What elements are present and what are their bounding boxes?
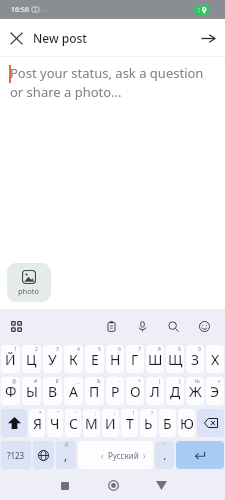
staticText: 6 xyxy=(118,346,121,353)
staticText: Х xyxy=(211,350,220,369)
button[interactable]: Ц xyxy=(22,345,41,373)
staticText: У xyxy=(48,350,57,369)
button[interactable]: Ь xyxy=(140,409,157,437)
staticText: ! xyxy=(133,410,135,417)
staticText: # xyxy=(34,378,38,385)
staticText: New post xyxy=(33,30,87,46)
button[interactable]: В xyxy=(43,377,62,405)
button[interactable]: Enter xyxy=(176,441,224,469)
staticText: Е xyxy=(91,350,99,369)
staticText: П xyxy=(89,382,100,401)
button[interactable]: К xyxy=(64,345,83,373)
button[interactable]: Keyboard options xyxy=(5,315,27,337)
button[interactable]: Clipboard xyxy=(101,316,121,336)
button[interactable]: Л xyxy=(146,377,164,405)
staticText: Д xyxy=(170,382,181,401)
staticText: 5 xyxy=(98,346,101,353)
button[interactable]: П xyxy=(85,377,104,405)
staticText: « xyxy=(218,378,221,385)
button[interactable]: Send post xyxy=(191,19,225,57)
staticText: № xyxy=(195,378,201,385)
staticText: Ы xyxy=(26,382,38,401)
staticText: О xyxy=(130,382,141,401)
button[interactable]: Я xyxy=(29,409,45,437)
button[interactable]: Change language xyxy=(33,441,54,469)
button[interactable]: О xyxy=(126,377,144,405)
button[interactable]: М xyxy=(83,409,100,437)
button[interactable]: А xyxy=(64,377,83,405)
button[interactable]: Д xyxy=(166,377,184,405)
button[interactable]: Symbols xyxy=(1,441,31,469)
button[interactable]: Ю xyxy=(178,409,195,437)
button[interactable]: Й xyxy=(1,345,20,373)
staticText: › xyxy=(143,450,146,461)
staticText: : xyxy=(95,410,97,417)
button[interactable]: С xyxy=(65,409,81,437)
button[interactable]: Emoji xyxy=(194,316,214,336)
button[interactable]: Ч xyxy=(47,409,63,437)
button[interactable]: Э xyxy=(206,377,224,405)
button[interactable]: Space xyxy=(78,441,153,469)
button[interactable]: Ш xyxy=(146,345,164,373)
staticText: Ч xyxy=(50,414,60,433)
button[interactable]: Back xyxy=(137,471,185,500)
button[interactable]: Е xyxy=(85,345,104,373)
staticText: Ж xyxy=(189,382,202,401)
button[interactable]: И xyxy=(102,409,119,437)
staticText: " xyxy=(57,410,60,417)
button[interactable]: У xyxy=(43,345,62,373)
button[interactable]: Ж xyxy=(186,377,204,405)
staticText: " xyxy=(163,442,166,449)
staticText: 7 xyxy=(138,346,141,353)
staticText: 0 xyxy=(198,346,201,353)
button[interactable]: Recent apps xyxy=(41,471,89,500)
button[interactable]: Backspace xyxy=(197,409,224,437)
staticText: Русский xyxy=(108,450,139,461)
button[interactable]: Home xyxy=(89,471,137,500)
staticText: ‹ xyxy=(101,450,104,461)
staticText: ?123 xyxy=(7,450,25,461)
staticText: & xyxy=(97,378,101,385)
button[interactable]: Ы xyxy=(22,377,41,405)
staticText: ; xyxy=(114,410,116,417)
button[interactable]: Shift xyxy=(1,409,27,437)
staticText: Н xyxy=(110,350,121,369)
staticText: - xyxy=(119,378,121,385)
staticText: К xyxy=(69,350,78,369)
staticText: 8 xyxy=(158,346,161,353)
staticText: В xyxy=(48,382,58,401)
button[interactable]: Voice input xyxy=(132,316,152,336)
staticText: photo xyxy=(18,286,40,296)
button[interactable]: photo xyxy=(7,263,51,302)
button[interactable]: Т xyxy=(121,409,138,437)
staticText: ( xyxy=(159,378,161,385)
staticText: Ь xyxy=(144,414,153,433)
staticText: 9 xyxy=(178,346,181,353)
button[interactable]: З xyxy=(186,345,204,373)
button[interactable]: Г xyxy=(126,345,144,373)
button[interactable]: Б xyxy=(159,409,176,437)
staticText: 2 xyxy=(35,346,38,353)
staticText: 16:56 xyxy=(11,5,29,15)
staticText: ' xyxy=(76,410,78,417)
staticText: С xyxy=(69,414,78,433)
button[interactable]: Щ xyxy=(166,345,184,373)
staticText: Щ xyxy=(168,350,183,369)
button[interactable]: . xyxy=(155,441,174,469)
button[interactable]: Close xyxy=(0,19,32,57)
button[interactable]: Search xyxy=(163,316,183,336)
button[interactable]: Р xyxy=(106,377,124,405)
staticText: ) xyxy=(179,378,181,385)
staticText: Я xyxy=(33,414,42,433)
staticText: * xyxy=(39,410,42,417)
button[interactable]: Н xyxy=(106,345,124,373)
button[interactable]: , xyxy=(56,441,76,469)
staticText: ? xyxy=(151,410,154,417)
staticText: Р xyxy=(111,382,120,401)
staticText: Й xyxy=(5,350,16,369)
button[interactable]: Х xyxy=(206,345,224,373)
staticText: . xyxy=(163,447,167,463)
staticText: Ф xyxy=(5,382,17,401)
button[interactable]: Ф xyxy=(1,377,20,405)
staticText: 1 xyxy=(14,346,17,353)
